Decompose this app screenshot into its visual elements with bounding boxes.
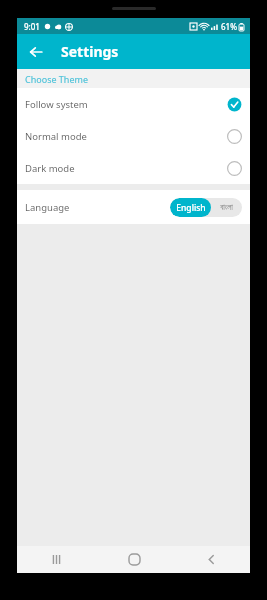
button[interactable]: Back — [23, 39, 49, 65]
staticText: Language — [25, 201, 70, 214]
staticText: বাংলা — [220, 204, 233, 212]
button[interactable]: Dark mode — [17, 152, 250, 184]
staticText: Normal mode — [25, 130, 87, 143]
button[interactable]: Recent apps — [39, 546, 73, 573]
button[interactable]: Follow system — [17, 88, 250, 120]
staticText: Dark mode — [25, 162, 75, 175]
staticText: 9:01 — [24, 21, 40, 32]
staticText: Follow system — [25, 98, 88, 111]
staticText: Choose Theme — [25, 73, 89, 85]
button[interactable]: বাংলা — [211, 198, 242, 217]
button[interactable]: Normal mode — [17, 120, 250, 152]
button[interactable]: English — [170, 198, 211, 217]
button[interactable]: Back — [194, 546, 228, 573]
staticText: Settings — [61, 42, 119, 61]
staticText: 61% — [221, 21, 237, 32]
staticText: English — [176, 202, 206, 214]
button[interactable]: Home — [117, 546, 151, 573]
